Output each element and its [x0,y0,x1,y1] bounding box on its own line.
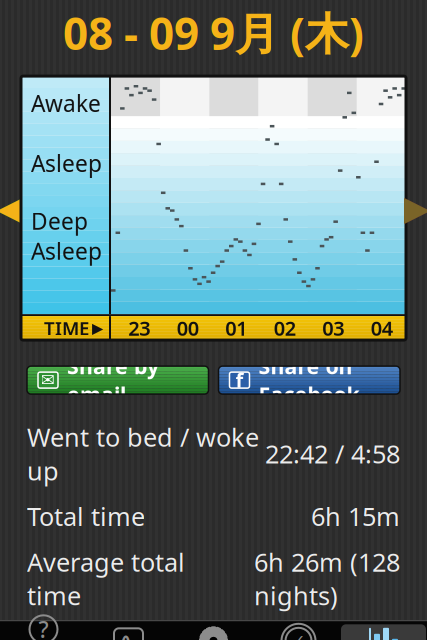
button[interactable]: ? [1,624,86,640]
staticText: 02 [274,315,296,341]
staticText: Share by email [67,352,159,408]
staticText: 22:42 / 4:58 [265,437,400,470]
staticText: ✉ [40,370,55,390]
staticText: Average total time [27,545,185,612]
staticText: 6h 15m [311,499,400,533]
button[interactable]: ✉ [27,366,208,394]
staticText: ∿ [119,628,138,640]
button[interactable]: Settings [171,624,256,640]
button[interactable]: Statistics [341,624,426,640]
button[interactable]: ∿ [86,624,171,640]
staticText: 6h 26m (128 nights) [254,545,400,612]
button[interactable]: f [218,366,400,394]
staticText: Share on Facebook [258,352,359,408]
button[interactable]: Next night [406,88,427,328]
staticText: ? [38,614,48,640]
staticText: f [235,367,243,393]
staticText: 04 [371,315,393,341]
staticText: ◀ [0,188,23,228]
button[interactable]: ✓ [256,624,341,640]
staticText: 01 [225,315,247,341]
staticText: ✓ [292,632,305,640]
staticText: ▶ [403,188,427,228]
staticText: ▶ [92,320,103,336]
staticText: Awake [31,88,101,118]
staticText: 08 - 09 9月 (木) [63,4,364,62]
staticText: Deep [31,206,88,236]
staticText: Total time [27,499,145,533]
staticText: 03 [322,315,344,341]
staticText: TIME [44,316,89,340]
staticText: Went to bed / woke up [27,420,259,487]
staticText: Asleep [31,148,102,178]
button[interactable]: Previous night [0,88,21,328]
staticText: 00 [177,315,199,341]
staticText: Asleep [31,236,102,266]
staticText: 23 [128,315,150,341]
